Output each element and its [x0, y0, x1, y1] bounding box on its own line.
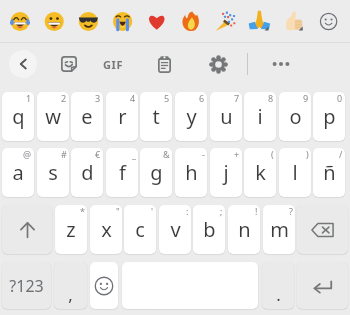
staticText: 6: [199, 92, 205, 104]
button[interactable]: t: [140, 92, 172, 141]
staticText: 9: [303, 92, 309, 104]
staticText: 7: [234, 92, 240, 104]
button[interactable]: q: [2, 92, 34, 141]
button[interactable]: s: [37, 148, 69, 197]
staticText: 2: [61, 92, 67, 104]
button[interactable]: l: [279, 148, 311, 197]
staticText: 3: [95, 92, 101, 104]
button[interactable]: c: [124, 205, 156, 254]
staticText: f: [119, 159, 126, 186]
staticText: /: [339, 148, 343, 160]
staticText: c: [135, 216, 145, 243]
staticText: 1: [26, 92, 32, 104]
staticText: ?123: [9, 275, 44, 297]
button[interactable]: a: [2, 148, 34, 197]
staticText: ,: [68, 283, 73, 306]
staticText: _: [132, 148, 136, 160]
staticText: h: [185, 159, 198, 186]
staticText: x: [101, 216, 112, 243]
staticText: e: [81, 103, 93, 130]
button[interactable]: e: [71, 92, 103, 141]
button[interactable]: Shift: [2, 205, 52, 254]
staticText: w: [45, 103, 61, 130]
staticText: €: [95, 148, 101, 160]
button[interactable]: Backspace: [297, 205, 348, 254]
button[interactable]: b: [193, 205, 225, 254]
staticText: 8: [268, 92, 274, 104]
staticText: u: [220, 103, 233, 130]
staticText: ?: [289, 205, 293, 217]
button[interactable]: r: [106, 92, 138, 141]
staticText: l: [292, 159, 298, 186]
button[interactable]: ñ: [313, 148, 345, 197]
staticText: k: [255, 159, 266, 186]
button[interactable]: n: [228, 205, 260, 254]
staticText: ": [116, 205, 120, 217]
staticText: ñ: [323, 159, 336, 186]
button[interactable]: u: [210, 92, 242, 141]
button[interactable]: z: [55, 205, 87, 254]
button[interactable]: y: [175, 92, 207, 141]
staticText: (: [271, 148, 274, 160]
button[interactable]: Stickers: [56, 51, 82, 77]
button[interactable]: i: [244, 92, 276, 141]
button[interactable]: j: [210, 148, 242, 197]
staticText: s: [48, 159, 58, 186]
button[interactable]: g: [140, 148, 172, 197]
staticText: y: [186, 103, 197, 130]
button[interactable]: Emoji: [90, 262, 118, 309]
staticText: v: [170, 216, 181, 243]
button[interactable]: m: [263, 205, 295, 254]
staticText: j: [223, 159, 229, 186]
staticText: a: [12, 159, 24, 186]
staticText: g: [150, 159, 163, 186]
button[interactable]: ?123: [2, 262, 51, 309]
button[interactable]: h: [175, 148, 207, 197]
staticText: 5: [164, 92, 170, 104]
button[interactable]: f: [106, 148, 138, 197]
staticText: o: [289, 103, 302, 130]
staticText: !: [255, 205, 258, 217]
staticText: @: [23, 148, 32, 160]
button[interactable]: Enter: [297, 262, 348, 309]
staticText: -: [202, 148, 205, 160]
staticText: 0: [337, 92, 343, 104]
staticText: &: [163, 148, 170, 160]
button[interactable]: ,: [54, 262, 87, 309]
staticText: :: [186, 205, 189, 217]
staticText: i: [257, 103, 263, 130]
button[interactable]: GIF: [100, 51, 126, 77]
staticText: GIF: [103, 57, 124, 72]
staticText: p: [323, 103, 336, 130]
staticText: 4: [130, 92, 136, 104]
button[interactable]: w: [37, 92, 69, 141]
staticText: +: [234, 148, 240, 160]
staticText: ;: [220, 205, 223, 217]
staticText: m: [270, 216, 289, 243]
staticText: t: [152, 103, 160, 130]
staticText: q: [12, 103, 25, 130]
button[interactable]: d: [71, 148, 103, 197]
button[interactable]: p: [313, 92, 345, 141]
staticText: r: [118, 103, 127, 130]
button[interactable]: Back: [9, 50, 37, 78]
button[interactable]: o: [279, 92, 311, 141]
staticText: b: [203, 216, 216, 243]
button[interactable]: More options: [268, 51, 294, 77]
button[interactable]: Settings: [205, 51, 231, 77]
staticText: *: [80, 205, 85, 217]
staticText: d: [81, 159, 94, 186]
staticText: #: [61, 148, 67, 160]
button[interactable]: Clipboard: [151, 51, 177, 77]
staticText: ': [151, 205, 154, 217]
button[interactable]: k: [244, 148, 276, 197]
staticText: .: [276, 283, 281, 306]
staticText: ): [306, 148, 309, 160]
button[interactable]: .: [262, 262, 294, 309]
staticText: n: [238, 216, 251, 243]
button[interactable]: v: [159, 205, 191, 254]
button[interactable]: x: [90, 205, 122, 254]
staticText: z: [66, 216, 76, 243]
